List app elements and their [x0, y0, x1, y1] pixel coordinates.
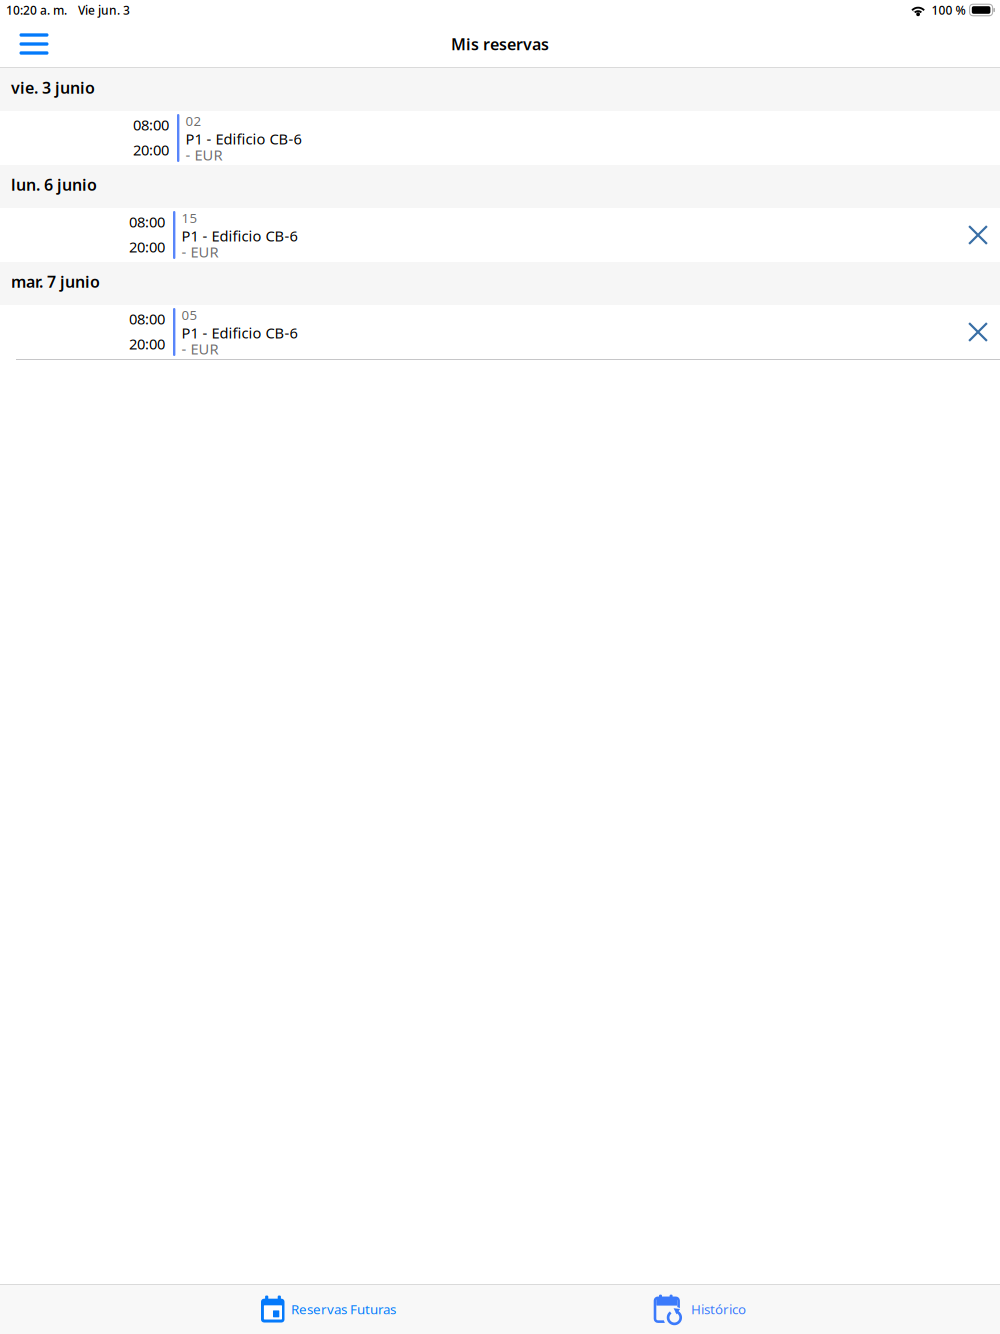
staticText: 02	[185, 112, 201, 130]
staticText: 100 %	[932, 2, 966, 18]
staticText: lun. 6 junio	[11, 174, 97, 195]
staticText: - EUR	[181, 242, 218, 261]
staticText: Reservas Futuras	[291, 1300, 396, 1318]
staticText: 05	[181, 306, 197, 324]
staticText: 08:00	[129, 309, 165, 328]
staticText: - EUR	[181, 339, 218, 358]
staticText: P1 - Edificio CB-6	[185, 129, 301, 148]
staticText: vie. 3 junio	[11, 77, 95, 98]
button[interactable]: Histórico	[500, 1284, 1000, 1334]
staticText: 10:20 a. m.	[6, 2, 67, 18]
staticText: 15	[181, 209, 197, 227]
staticText: Vie jun. 3	[78, 2, 130, 18]
staticText: 08:00	[133, 115, 169, 134]
staticText: P1 - Edificio CB-6	[181, 323, 297, 342]
button[interactable]: 08:00	[0, 305, 956, 359]
staticText: P1 - Edificio CB-6	[181, 226, 297, 245]
staticText: 20:00	[129, 334, 165, 353]
button[interactable]: Cancelar reserva	[956, 213, 1000, 257]
button[interactable]: Reservas Futuras	[0, 1284, 500, 1334]
staticText: 20:00	[133, 140, 169, 159]
staticText: - EUR	[185, 145, 222, 164]
button[interactable]: 08:00	[0, 111, 1000, 165]
button[interactable]: Menú	[12, 22, 56, 66]
staticText: Histórico	[691, 1300, 746, 1318]
staticText: Mis reservas	[451, 33, 549, 55]
button[interactable]: 08:00	[0, 208, 956, 262]
staticText: 20:00	[129, 237, 165, 256]
staticText: 08:00	[129, 212, 165, 231]
staticText: mar. 7 junio	[11, 271, 100, 292]
button[interactable]: Cancelar reserva	[956, 310, 1000, 354]
